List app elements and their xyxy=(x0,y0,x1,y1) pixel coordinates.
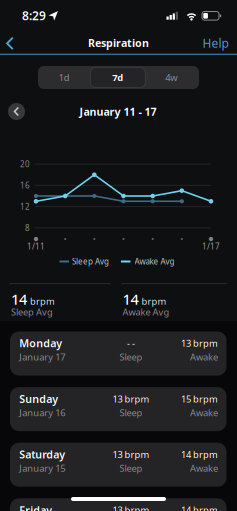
button[interactable] xyxy=(8,103,25,120)
staticText: Respiration xyxy=(88,36,149,50)
staticText: brpm xyxy=(30,295,55,307)
staticText: - - xyxy=(127,337,135,349)
staticText: 1/17 xyxy=(202,241,220,252)
staticText: Friday xyxy=(19,503,52,511)
staticText: Sleep xyxy=(119,351,142,363)
staticText: Sleep xyxy=(119,462,142,474)
staticText: 4w xyxy=(165,71,177,84)
button[interactable]: Help xyxy=(202,35,228,51)
staticText: January 16 xyxy=(19,406,65,419)
staticText: 1d xyxy=(59,71,70,84)
staticText: 16 xyxy=(20,180,30,191)
button[interactable]: 4w xyxy=(145,66,198,89)
staticText: 13 brpm xyxy=(112,448,149,461)
staticText: Sleep Avg xyxy=(11,306,53,318)
button[interactable]: Saturday xyxy=(10,443,226,487)
staticText: 20 xyxy=(20,159,30,169)
staticText: 12 xyxy=(20,201,30,212)
staticText: Sunday xyxy=(19,392,58,406)
button[interactable]: 7d xyxy=(91,66,144,89)
staticText: Saturday xyxy=(19,447,65,461)
staticText: Awake xyxy=(190,351,218,363)
button[interactable]: 1d xyxy=(38,66,91,89)
staticText: 14 brpm xyxy=(181,448,218,461)
staticText: 8:29 xyxy=(22,7,46,23)
staticText: 7d xyxy=(112,71,123,84)
staticText: Help xyxy=(202,35,228,51)
staticText: 13 brpm xyxy=(112,393,149,405)
staticText: Sleep xyxy=(119,406,142,419)
staticText: Awake xyxy=(190,462,218,474)
staticText: 8 xyxy=(25,222,30,233)
button[interactable]: Monday xyxy=(10,331,226,375)
staticText: 13 brpm xyxy=(112,504,149,511)
staticText: Sleep Avg xyxy=(72,256,109,267)
staticText: Awake xyxy=(190,406,218,419)
staticText: January 17 xyxy=(19,351,65,363)
staticText: January 15 xyxy=(19,462,65,474)
button[interactable] xyxy=(3,35,17,51)
staticText: 14 xyxy=(122,289,138,309)
staticText: 1/11 xyxy=(27,241,45,252)
staticText: 15 brpm xyxy=(181,393,218,405)
staticText: Monday xyxy=(19,336,62,350)
staticText: brpm xyxy=(141,295,166,307)
button[interactable]: Sunday xyxy=(10,387,226,431)
staticText: January 11 - 17 xyxy=(79,104,156,119)
staticText: 14 xyxy=(11,289,27,309)
staticText: 14 brpm xyxy=(181,504,218,511)
staticText: 13 brpm xyxy=(181,337,218,349)
button[interactable]: Friday xyxy=(10,498,226,511)
staticText: Awake Avg xyxy=(134,256,174,267)
staticText: Awake Avg xyxy=(122,306,169,318)
